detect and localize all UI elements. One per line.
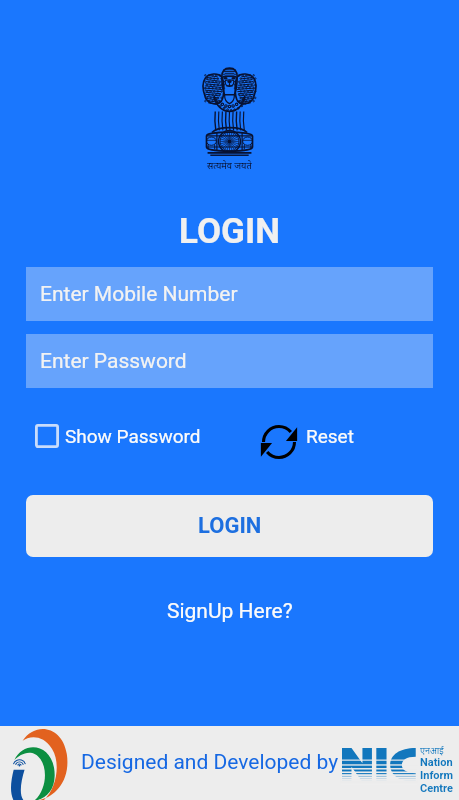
- staticText: Nation: [420, 756, 453, 769]
- button[interactable]: Reset: [255, 412, 354, 460]
- button[interactable]: SignUp Here?: [159, 595, 301, 628]
- staticText: Inform: [420, 769, 454, 782]
- staticText: सत्यमेव जयते: [207, 159, 252, 171]
- staticText: Designed and Developed by: [81, 750, 339, 775]
- button[interactable]: Enter Mobile Number: [26, 267, 433, 321]
- staticText: Enter Password: [40, 349, 187, 374]
- staticText: Centre: [420, 782, 453, 795]
- other: National Informatics Centre: [342, 748, 415, 782]
- button[interactable]: Enter Password: [26, 334, 433, 388]
- staticText: Reset: [306, 425, 354, 447]
- other: Reset: [261, 424, 297, 460]
- staticText: LOGIN: [198, 513, 262, 539]
- button[interactable]: LOGIN: [26, 495, 433, 557]
- staticText: Enter Mobile Number: [40, 282, 238, 307]
- other: Digital India: [6, 726, 70, 800]
- staticText: Show Password: [65, 425, 201, 447]
- staticText: एनआई: [420, 744, 444, 756]
- button[interactable]: Show Password: [26, 424, 201, 448]
- staticText: LOGIN: [0, 211, 459, 252]
